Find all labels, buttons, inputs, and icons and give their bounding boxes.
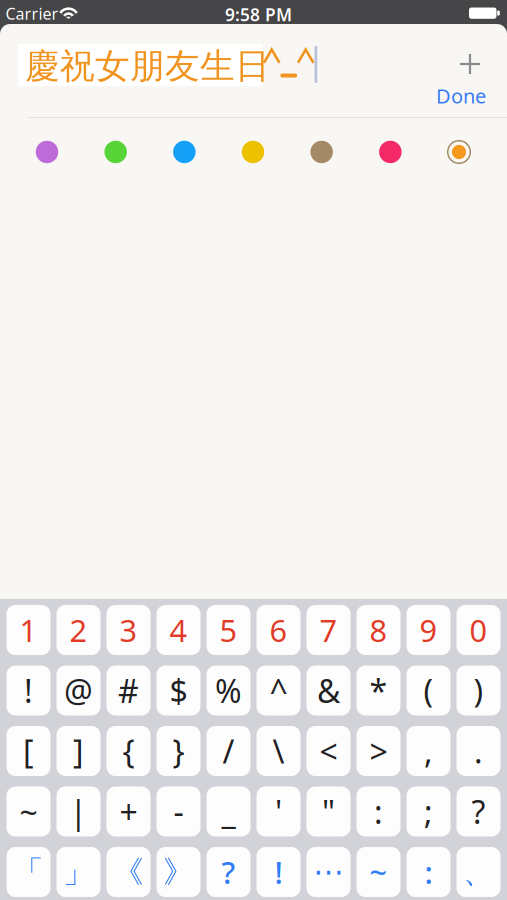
button[interactable]: 、	[456, 847, 500, 897]
button[interactable]: ?	[456, 786, 500, 836]
button[interactable]: 8	[356, 605, 400, 655]
button[interactable]: ~	[6, 786, 50, 836]
button[interactable]: |	[56, 786, 100, 836]
staticText: 0	[469, 610, 487, 650]
button[interactable]: 1	[6, 605, 50, 655]
button[interactable]: 3	[106, 605, 150, 655]
staticText: |	[69, 790, 87, 833]
button[interactable]: "	[306, 786, 350, 836]
button[interactable]: Done	[436, 82, 486, 109]
button[interactable]: }	[156, 726, 200, 776]
staticText: ⋯	[313, 855, 344, 889]
staticText: ^	[269, 669, 287, 712]
staticText: !	[24, 669, 33, 712]
button[interactable]: 9	[406, 605, 450, 655]
staticText: [	[23, 730, 34, 772]
staticText: %	[215, 669, 242, 712]
button[interactable]: 2	[56, 605, 100, 655]
staticText: 《	[113, 853, 144, 891]
staticText: >	[369, 730, 387, 772]
staticText: 》	[163, 853, 194, 891]
button[interactable]: _	[206, 786, 250, 836]
button[interactable]: %	[206, 665, 250, 715]
staticText: ?	[221, 852, 235, 892]
button[interactable]: *	[356, 665, 400, 715]
staticText: $	[169, 669, 187, 712]
button[interactable]: :	[406, 847, 450, 897]
button[interactable]: /	[206, 726, 250, 776]
button[interactable]: Colour 5	[310, 141, 333, 163]
staticText: :	[374, 790, 383, 833]
button[interactable]: (	[406, 665, 450, 715]
staticText: Done	[436, 82, 486, 109]
button[interactable]: Colour 1	[36, 141, 58, 163]
button[interactable]: +	[106, 786, 150, 836]
staticText: ;	[424, 790, 433, 833]
button[interactable]: Add	[453, 47, 487, 81]
button[interactable]: \	[256, 726, 300, 776]
button[interactable]: .	[456, 726, 500, 776]
staticText: .	[474, 730, 483, 772]
button[interactable]: 》	[156, 847, 200, 897]
button[interactable]: 5	[206, 605, 250, 655]
staticText: {	[122, 730, 134, 772]
button[interactable]: ?	[206, 847, 250, 897]
button[interactable]: Colour 6	[379, 141, 402, 163]
button[interactable]: 4	[156, 605, 200, 655]
button[interactable]: ,	[406, 726, 450, 776]
staticText: 「	[13, 853, 44, 891]
staticText: :	[424, 852, 432, 892]
button[interactable]: &	[306, 665, 350, 715]
button[interactable]: $	[156, 665, 200, 715]
button[interactable]: Title	[16, 44, 320, 86]
button[interactable]: !	[256, 847, 300, 897]
button[interactable]: ;	[406, 786, 450, 836]
button[interactable]: Colour 2	[104, 141, 127, 163]
button[interactable]: :	[356, 786, 400, 836]
button[interactable]: ~	[356, 847, 400, 897]
staticText: \	[272, 730, 284, 772]
button[interactable]: #	[106, 665, 150, 715]
staticText: ~	[19, 790, 37, 833]
button[interactable]: ^	[256, 665, 300, 715]
button[interactable]: !	[6, 665, 50, 715]
button[interactable]: ⋯	[306, 847, 350, 897]
staticText: }	[172, 730, 184, 772]
button[interactable]: Colour 3	[173, 141, 196, 163]
button[interactable]: {	[106, 726, 150, 776]
button[interactable]: ]	[56, 726, 100, 776]
staticText: ?	[471, 790, 485, 833]
button[interactable]: Colour 4	[242, 141, 264, 163]
staticText: *	[369, 669, 387, 712]
button[interactable]: '	[256, 786, 300, 836]
button[interactable]: @	[56, 665, 100, 715]
button[interactable]: >	[356, 726, 400, 776]
staticText: 5	[219, 610, 237, 650]
button[interactable]: 6	[256, 605, 300, 655]
staticText: 1	[19, 610, 37, 650]
button[interactable]: 《	[106, 847, 150, 897]
staticText: 7	[319, 610, 337, 650]
button[interactable]: 0	[456, 605, 500, 655]
staticText: 慶祝女朋友生日	[25, 45, 270, 88]
button[interactable]: <	[306, 726, 350, 776]
staticText: ]	[73, 730, 84, 772]
button[interactable]: [	[6, 726, 50, 776]
staticText: &	[317, 669, 340, 712]
staticText: "	[322, 790, 335, 833]
staticText: '	[275, 790, 282, 833]
staticText: +	[119, 790, 137, 833]
staticText: 6	[269, 610, 287, 650]
staticText: 3	[119, 610, 137, 650]
staticText: 2	[69, 610, 87, 650]
button[interactable]: )	[456, 665, 500, 715]
staticText: ,	[424, 730, 433, 772]
button[interactable]: Orange (selected)	[448, 141, 470, 163]
button[interactable]: 」	[56, 847, 100, 897]
staticText: 」	[63, 853, 94, 891]
button[interactable]: -	[156, 786, 200, 836]
staticText: -	[173, 790, 183, 833]
button[interactable]: 「	[6, 847, 50, 897]
button[interactable]: 7	[306, 605, 350, 655]
staticText: @	[64, 669, 93, 712]
